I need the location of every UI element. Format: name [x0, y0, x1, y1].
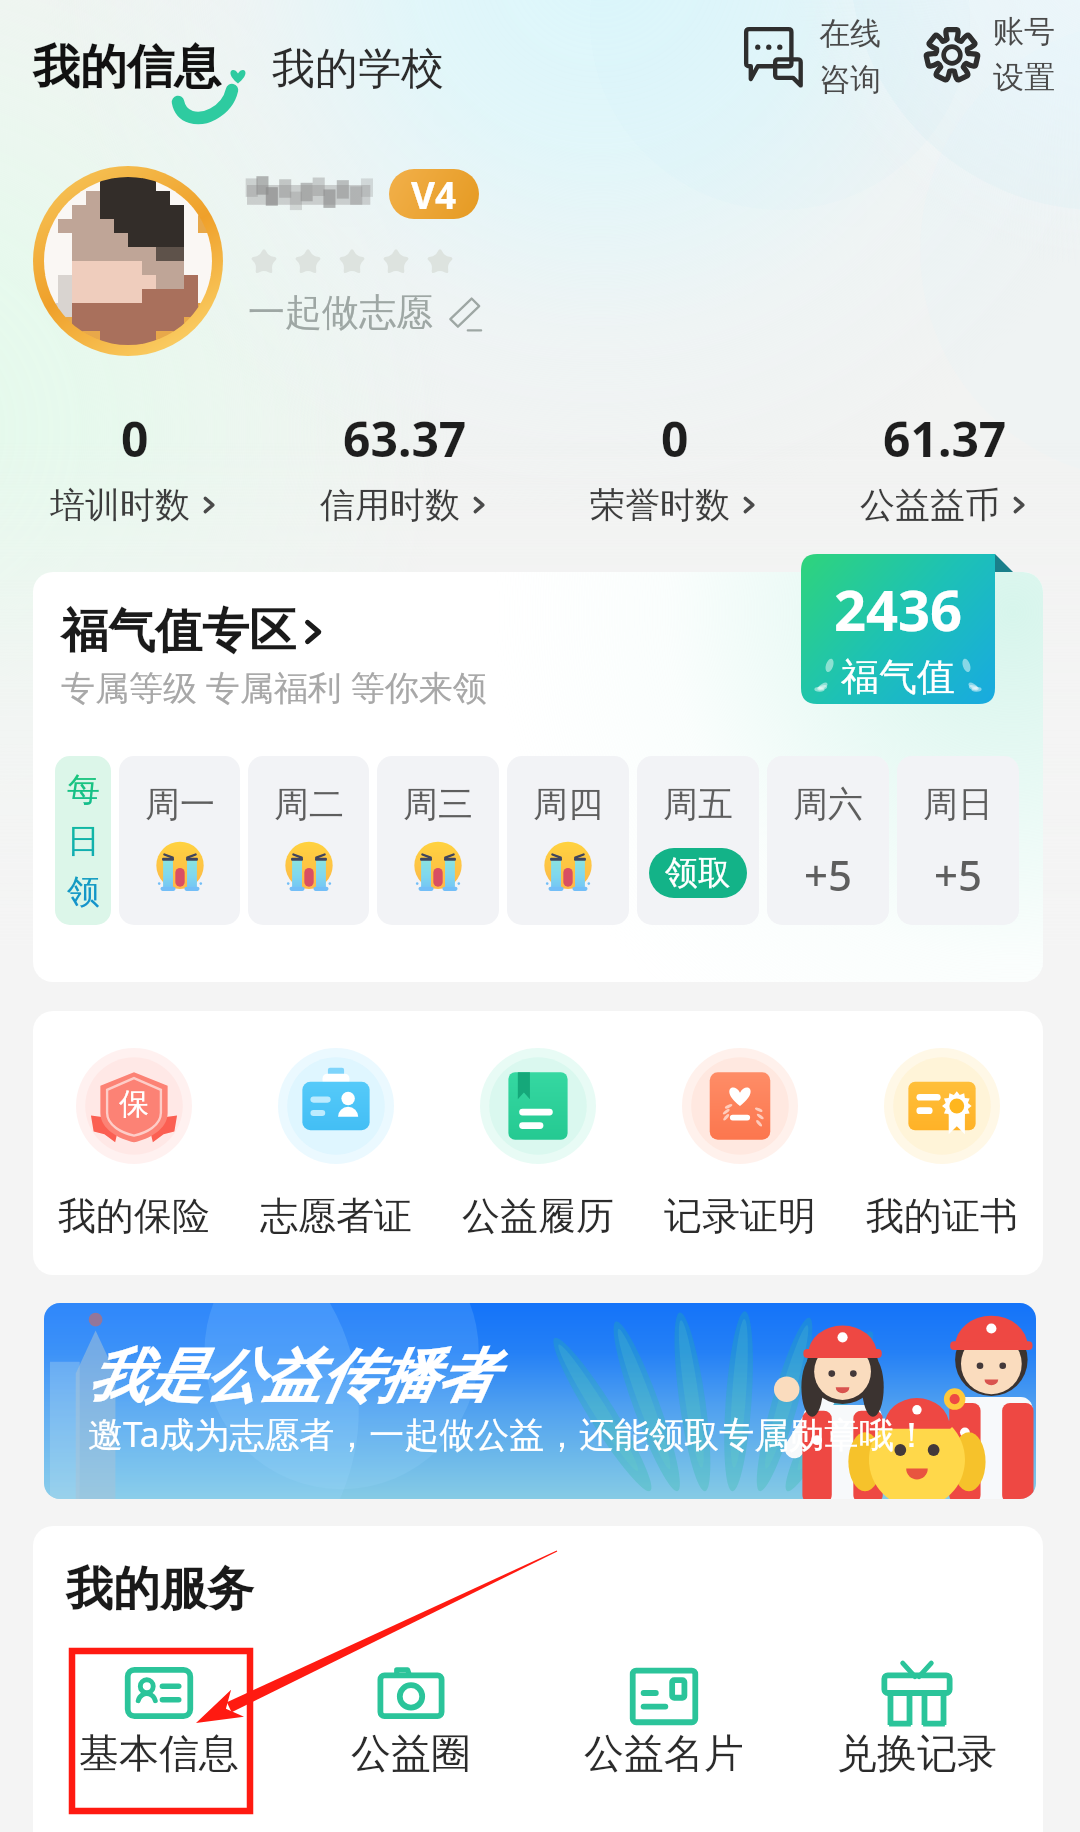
- button[interactable]: 基本信息: [33, 1659, 285, 1778]
- button[interactable]: 61.37: [810, 406, 1080, 527]
- button[interactable]: 周六: [767, 756, 889, 925]
- staticText: 志愿者证: [260, 1192, 412, 1240]
- staticText: 公益益币: [860, 483, 1000, 527]
- staticText: 福气值: [841, 653, 955, 701]
- button[interactable]: 我是公益传播者: [44, 1303, 1036, 1499]
- button[interactable]: 周一: [119, 756, 240, 925]
- button[interactable]: V4: [389, 169, 479, 219]
- staticText: 0: [661, 406, 689, 471]
- staticText: 保: [119, 1085, 149, 1123]
- button[interactable]: 周三: [377, 756, 499, 925]
- button[interactable]: 每: [55, 756, 111, 925]
- staticText: 每: [67, 769, 100, 811]
- button[interactable]: 0: [0, 406, 270, 527]
- button[interactable]: 我的学校: [272, 42, 444, 96]
- button[interactable]: 我的证书: [841, 1048, 1043, 1240]
- staticText: +5: [804, 846, 853, 903]
- staticText: 福气值专区: [61, 602, 296, 661]
- staticText: 日: [67, 820, 100, 862]
- staticText: 我的服务: [66, 1560, 254, 1619]
- staticText: 周二: [274, 782, 344, 826]
- button[interactable]: 头像: [33, 166, 223, 356]
- button[interactable]: 周日: [897, 756, 1019, 925]
- staticText: 我的证书: [866, 1192, 1018, 1240]
- staticText: 公益履历: [462, 1192, 614, 1240]
- staticText: 周三: [403, 782, 473, 826]
- staticText: 我的保险: [58, 1192, 210, 1240]
- staticText: 公益圈: [351, 1728, 471, 1778]
- staticText: 周一: [145, 782, 215, 826]
- button[interactable]: 在线咨询: [745, 14, 881, 99]
- staticText: 63.37: [343, 406, 467, 471]
- staticText: 在线: [819, 14, 881, 53]
- staticText: 2436: [834, 571, 963, 647]
- button[interactable]: 周二: [248, 756, 369, 925]
- staticText: 61.37: [883, 406, 1007, 471]
- staticText: 设置: [993, 58, 1055, 97]
- staticText: 周日: [923, 782, 993, 826]
- staticText: 咨询: [819, 60, 881, 99]
- button[interactable]: 记录证明: [639, 1048, 841, 1240]
- staticText: 专属等级 专属福利 等你来领: [61, 664, 487, 710]
- button[interactable]: 账号设置: [921, 12, 1055, 97]
- staticText: 领取: [665, 852, 731, 894]
- button[interactable]: 0: [540, 406, 810, 527]
- staticText: 我的信息: [33, 38, 221, 97]
- staticText: 周四: [533, 782, 603, 826]
- button[interactable]: 2436: [801, 554, 1013, 704]
- staticText: 信用时数: [320, 483, 460, 527]
- button[interactable]: 福气值专区: [61, 602, 329, 661]
- staticText: 账号: [993, 12, 1055, 51]
- button[interactable]: 63.37: [270, 406, 540, 527]
- staticText: 0: [121, 406, 149, 471]
- staticText: 一起做志愿: [248, 289, 433, 336]
- staticText: +5: [934, 846, 983, 903]
- button[interactable]: 一起做志愿: [248, 289, 483, 336]
- button[interactable]: 保: [33, 1048, 235, 1240]
- button[interactable]: 我的信息: [33, 38, 221, 97]
- button[interactable]: 兑换记录: [790, 1659, 1043, 1778]
- staticText: V4: [411, 169, 457, 219]
- button[interactable]: 周五: [637, 756, 759, 925]
- staticText: 记录证明: [664, 1192, 816, 1240]
- staticText: 周五: [663, 782, 733, 826]
- staticText: 我是公益传播者: [88, 1340, 494, 1413]
- staticText: 公益名片: [584, 1728, 744, 1778]
- button[interactable]: 公益圈: [285, 1659, 537, 1778]
- staticText: 基本信息: [79, 1728, 239, 1778]
- staticText: 周六: [793, 782, 863, 826]
- button[interactable]: 公益履历: [437, 1048, 639, 1240]
- staticText: 培训时数: [50, 483, 190, 527]
- button[interactable]: 公益名片: [537, 1659, 790, 1778]
- staticText: 领: [67, 871, 100, 913]
- button[interactable]: 周四: [507, 756, 629, 925]
- button[interactable]: 志愿者证: [235, 1048, 437, 1240]
- staticText: 兑换记录: [837, 1728, 997, 1778]
- staticText: 邀Ta成为志愿者，一起做公益，还能领取专属勋章哦！: [88, 1410, 930, 1458]
- staticText: 我的学校: [272, 42, 444, 96]
- staticText: 荣誉时数: [590, 483, 730, 527]
